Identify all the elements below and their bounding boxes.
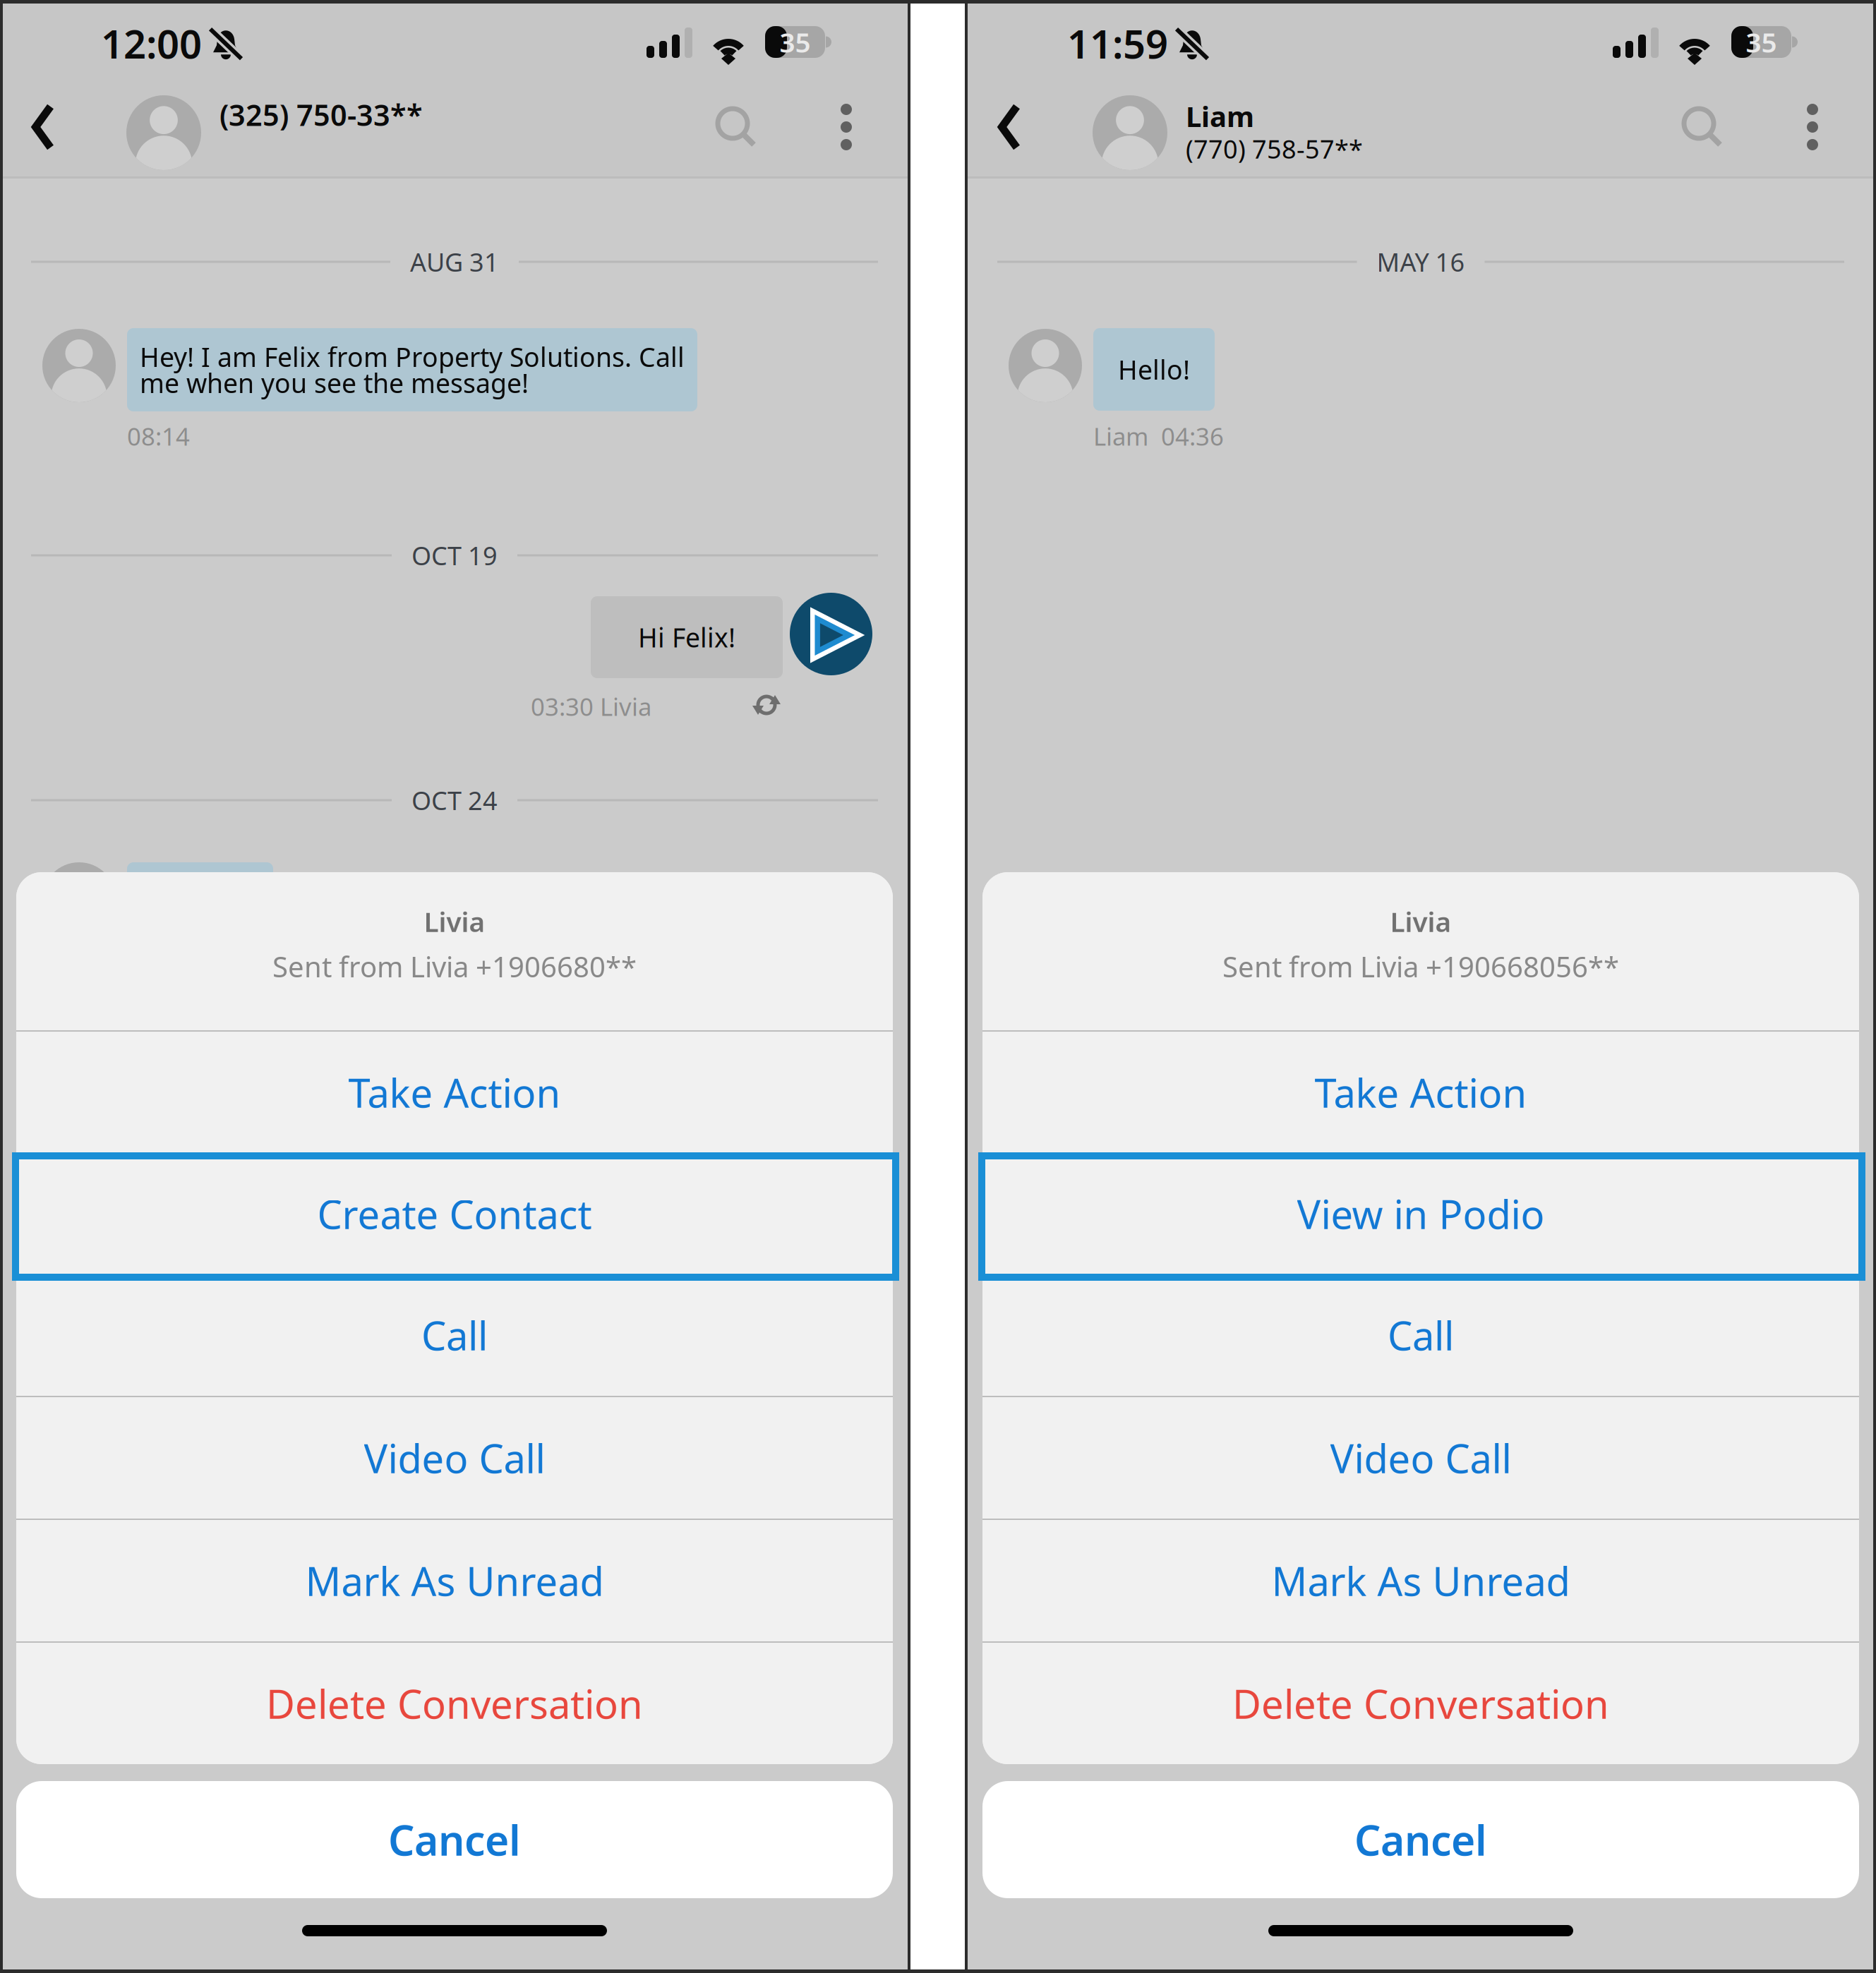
button[interactable]: More options — [814, 81, 878, 173]
staticText: Sent from Livia +190668056** — [1222, 948, 1619, 985]
button[interactable]: Take Action — [982, 1032, 1859, 1153]
button[interactable]: Call — [16, 1274, 893, 1396]
button[interactable]: Search — [697, 81, 775, 173]
staticText: Take Action — [1315, 1066, 1527, 1119]
button[interactable]: Take Action — [16, 1032, 893, 1153]
staticText: Video Call — [1330, 1432, 1511, 1484]
staticText: 35 — [780, 24, 811, 60]
staticText: Delete Conversation — [1232, 1677, 1609, 1730]
staticText: Hey! I am Felix from Property Solutions.… — [140, 339, 685, 374]
staticText: Take Action — [348, 1066, 561, 1119]
staticText: Mark As Unread — [305, 1554, 604, 1607]
staticText: 35 — [1746, 24, 1777, 60]
staticText: OCT 24 — [411, 783, 498, 817]
staticText: Cancel — [1354, 1812, 1487, 1867]
staticText: me when you see the message! — [140, 365, 529, 400]
staticText: Hello! — [1118, 352, 1190, 387]
button[interactable]: Delete Conversation — [982, 1643, 1859, 1764]
button[interactable]: Cancel — [16, 1781, 893, 1898]
button[interactable]: Mark As Unread — [982, 1520, 1859, 1641]
staticText: Livia — [424, 903, 485, 939]
staticText: Liam 04:36 — [1093, 420, 1224, 452]
staticText: 11:59 — [1067, 17, 1168, 69]
staticText: Delete Conversation — [266, 1677, 643, 1730]
staticText: Call — [421, 1309, 488, 1361]
staticText: View in Podio — [1297, 1187, 1545, 1240]
staticText: OCT 19 — [411, 538, 498, 572]
staticText: Sent from Livia +1906680** — [272, 948, 637, 985]
staticText: 03:30 Livia — [531, 690, 651, 723]
staticText: 08:14 — [127, 420, 190, 452]
staticText: (770) 758-57** — [1186, 132, 1363, 166]
staticText: Mark As Unread — [1271, 1554, 1570, 1607]
staticText: AUG 31 — [410, 245, 499, 279]
staticText: Hi Felix! — [638, 620, 735, 655]
button[interactable]: Video Call — [982, 1397, 1859, 1519]
button[interactable]: Video Call — [16, 1397, 893, 1519]
staticText: 12:00 — [101, 17, 202, 69]
staticText: Create Contact — [317, 1187, 592, 1240]
button[interactable]: Back — [975, 81, 1043, 173]
button[interactable]: Cancel — [982, 1781, 1859, 1898]
staticText: MAY 16 — [1377, 245, 1465, 279]
staticText: Video Call — [364, 1432, 545, 1484]
staticText: Cancel — [388, 1812, 521, 1867]
staticText: Livia — [1390, 903, 1451, 939]
staticText: (325) 750-33** — [220, 95, 423, 134]
staticText: Liam — [1186, 97, 1254, 135]
button[interactable]: Back — [9, 81, 77, 173]
button[interactable]: Call — [982, 1274, 1859, 1396]
staticText: Call — [1388, 1309, 1454, 1361]
button[interactable]: Create Contact — [16, 1153, 893, 1274]
button[interactable]: Search — [1664, 81, 1741, 173]
button[interactable]: Mark As Unread — [16, 1520, 893, 1641]
button[interactable]: View in Podio — [982, 1153, 1859, 1274]
button[interactable]: More options — [1781, 81, 1844, 173]
button[interactable]: Delete Conversation — [16, 1643, 893, 1764]
